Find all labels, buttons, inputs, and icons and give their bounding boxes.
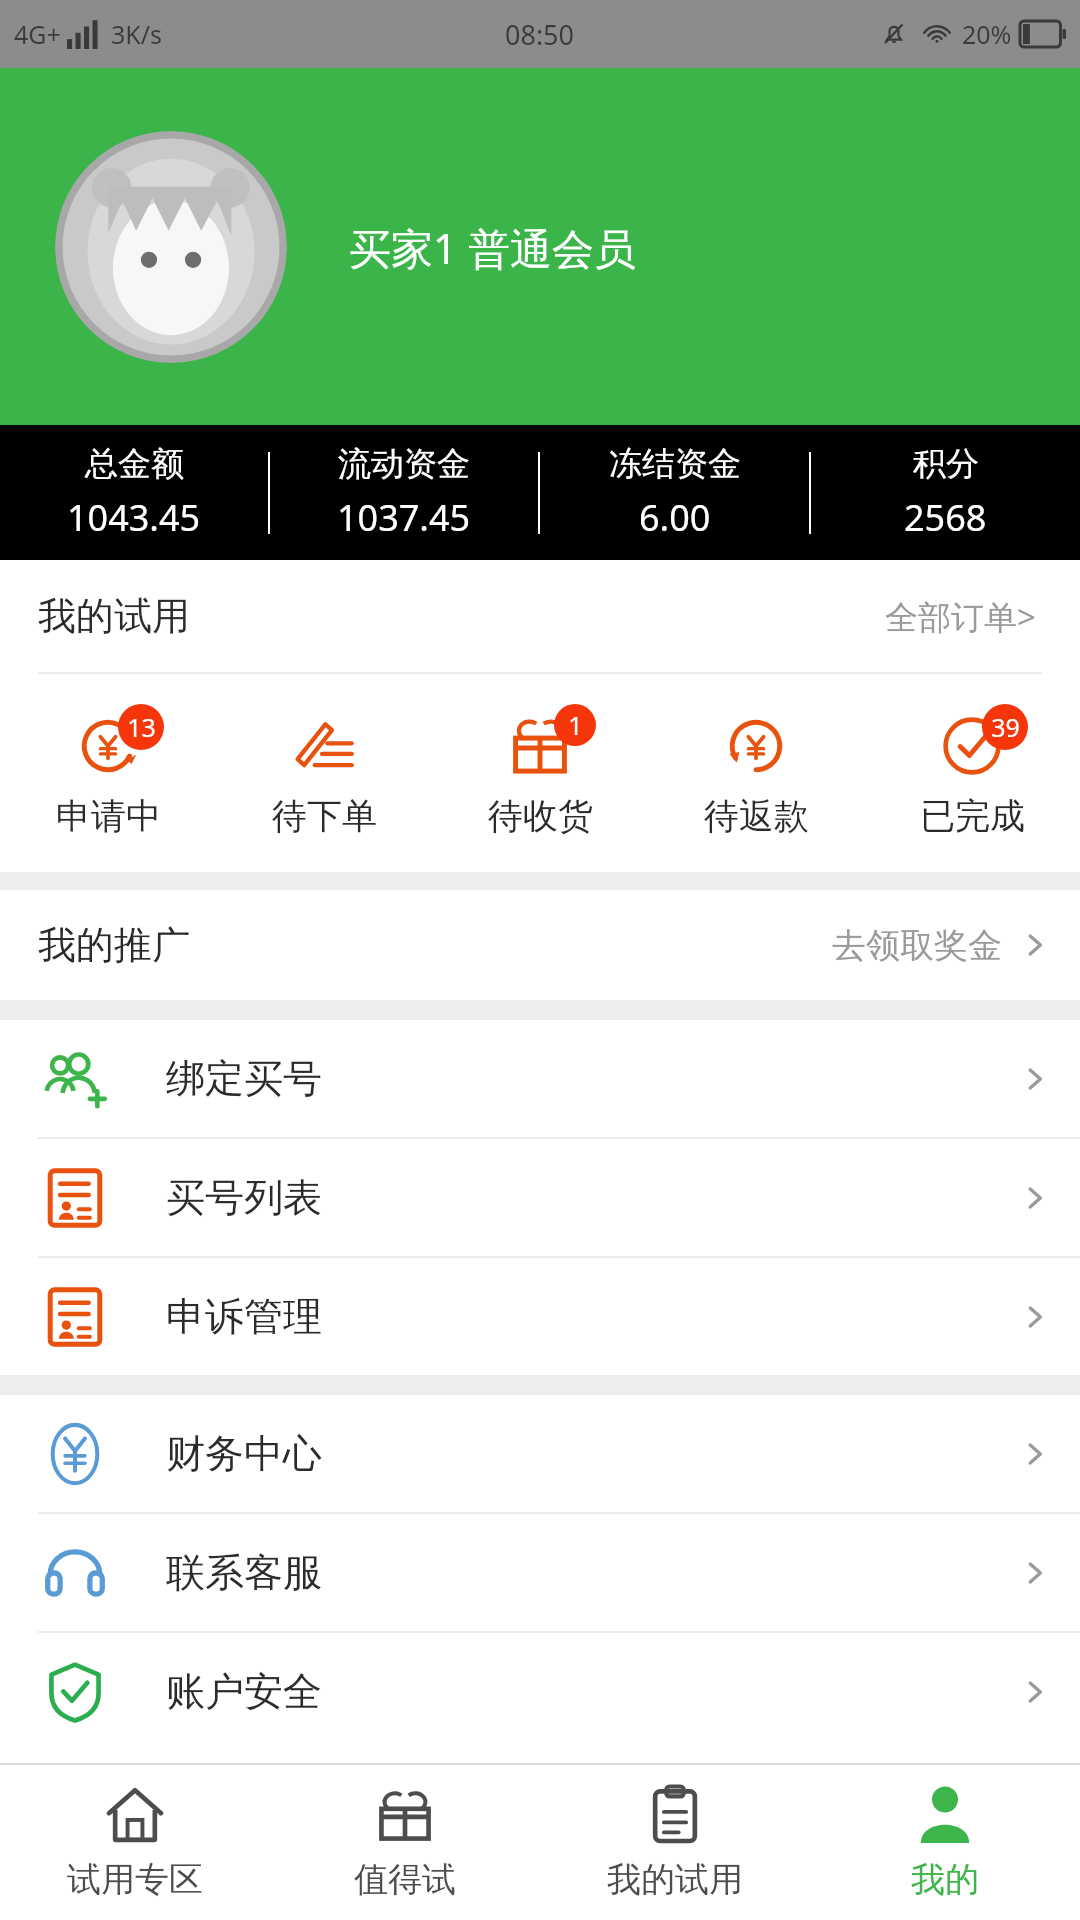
button[interactable]: 全部订单> — [879, 588, 1042, 645]
button[interactable]: 值得试 — [270, 1765, 540, 1920]
button[interactable]: 总金额 — [0, 425, 268, 560]
button[interactable]: 流动资金 — [270, 425, 538, 560]
button[interactable]: 试用专区 — [0, 1765, 270, 1920]
staticText: 流动资金 — [338, 443, 470, 485]
staticText: 总金额 — [85, 443, 184, 485]
button[interactable]: 13 — [0, 674, 216, 872]
button[interactable]: 财务中心 — [0, 1395, 1080, 1512]
button[interactable]: 冻结资金 — [540, 425, 809, 560]
staticText: 财务中心 — [166, 1429, 322, 1478]
staticText: 20% — [962, 17, 1012, 51]
button[interactable]: 我的 — [810, 1765, 1080, 1920]
staticText: 值得试 — [354, 1858, 456, 1901]
staticText: 申请中 — [56, 794, 161, 838]
staticText: 已完成 — [920, 794, 1025, 838]
button[interactable]: 我的推广 — [0, 890, 1080, 1000]
staticText: 1 — [568, 708, 583, 742]
staticText: 待收货 — [488, 794, 593, 838]
staticText: 冻结资金 — [609, 443, 741, 485]
button[interactable]: 1 — [432, 674, 648, 872]
button[interactable]: Avatar — [55, 131, 287, 363]
button[interactable]: 39 — [864, 674, 1080, 872]
staticText: 联系客服 — [166, 1548, 322, 1597]
staticText: 4G+ — [14, 17, 61, 51]
staticText: 2568 — [904, 493, 987, 542]
staticText: 待返款 — [704, 794, 809, 838]
staticText: 全部订单> — [885, 594, 1036, 639]
staticText: 积分 — [913, 443, 979, 485]
staticText: 1037.45 — [337, 493, 471, 542]
button[interactable]: 绑定买号 — [0, 1020, 1080, 1137]
staticText: 6.00 — [639, 493, 711, 542]
staticText: 去领取奖金 — [832, 924, 1002, 967]
button[interactable]: 联系客服 — [0, 1514, 1080, 1631]
button[interactable]: 买号列表 — [0, 1139, 1080, 1256]
staticText: 我的试用 — [607, 1858, 743, 1901]
staticText: 我的 — [911, 1858, 979, 1901]
staticText: 我的试用 — [38, 592, 190, 640]
staticText: 3K/s — [111, 17, 163, 51]
staticText: 买家1 普通会员 — [349, 219, 636, 276]
staticText: 账户安全 — [166, 1667, 322, 1716]
staticText: 我的推广 — [38, 921, 190, 969]
staticText: 试用专区 — [67, 1858, 203, 1901]
button[interactable]: 我的试用 — [540, 1765, 810, 1920]
staticText: 绑定买号 — [166, 1054, 322, 1103]
staticText: 申诉管理 — [166, 1292, 322, 1341]
button[interactable]: 待返款 — [648, 674, 864, 872]
staticText: 13 — [127, 710, 156, 744]
staticText: 08:50 — [505, 16, 575, 53]
staticText: 39 — [991, 710, 1020, 744]
staticText: 1043.45 — [67, 493, 201, 542]
button[interactable]: 账户安全 — [0, 1633, 1080, 1750]
button[interactable]: 积分 — [811, 425, 1080, 560]
staticText: 待下单 — [272, 794, 377, 838]
staticText: 买号列表 — [166, 1173, 322, 1222]
button[interactable]: 待下单 — [216, 674, 432, 872]
button[interactable]: 申诉管理 — [0, 1258, 1080, 1375]
